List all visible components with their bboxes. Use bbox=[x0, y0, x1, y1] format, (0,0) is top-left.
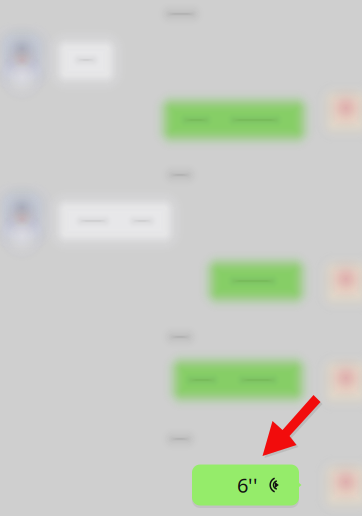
staticText: 6'' bbox=[237, 472, 258, 498]
button[interactable]: Play voice message, 6 seconds bbox=[192, 463, 306, 507]
